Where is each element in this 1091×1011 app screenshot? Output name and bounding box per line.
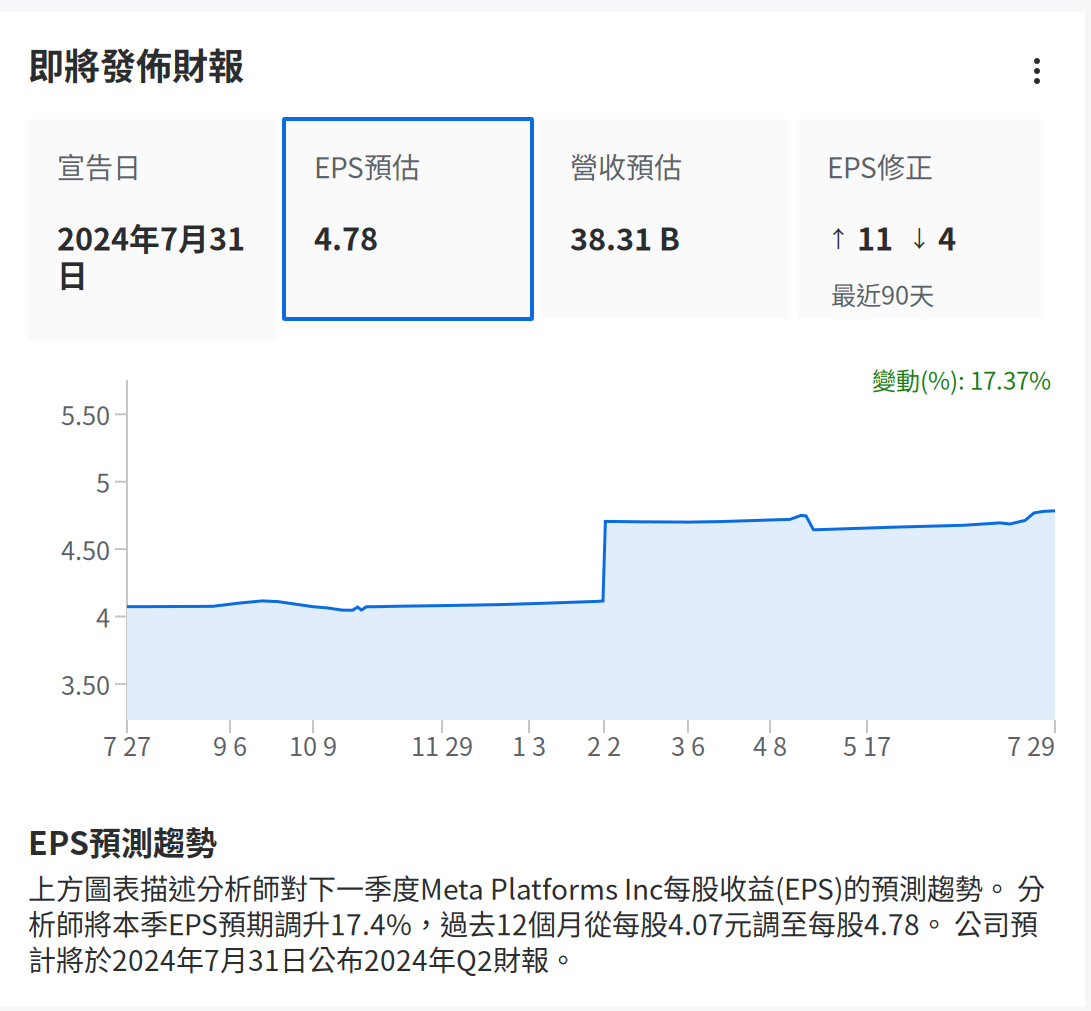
staticText: 宣告日 (57, 146, 141, 186)
staticText: ↓ (893, 221, 931, 254)
button[interactable]: 宣告日 (27, 119, 276, 341)
staticText: 5 (96, 463, 110, 500)
staticText: 上方圖表描述分析師對下一季度Meta Platforms Inc每股收益(EPS… (28, 867, 1045, 979)
staticText: 38.31 B (570, 215, 680, 259)
staticText: 5 17 (843, 727, 891, 763)
staticText: 7 29 (1007, 727, 1055, 763)
staticText: 1 3 (512, 727, 546, 763)
staticText: EPS修正 (827, 146, 933, 186)
staticText: 4 (931, 215, 956, 259)
staticText: 2024年7月31日 (57, 215, 245, 296)
staticText: 4 8 (753, 727, 787, 763)
staticText: 3 6 (671, 727, 705, 763)
staticText: 即將發佈財報 (28, 38, 244, 90)
staticText: 變動(%): 17.37% (872, 362, 1051, 397)
staticText: 5.50 (61, 396, 110, 433)
staticText: 4.78 (314, 215, 378, 259)
staticText: 最近90天 (831, 275, 934, 312)
button[interactable]: EPS預估 (284, 119, 532, 319)
staticText: 7 27 (103, 727, 151, 763)
staticText: 3.50 (61, 666, 110, 702)
staticText: 9 6 (213, 727, 247, 763)
staticText: ↑ (827, 221, 850, 254)
button[interactable]: 營收預估 (540, 119, 789, 319)
button[interactable]: 更多選項 (1009, 43, 1065, 99)
staticText: EPS預測趨勢 (28, 818, 217, 864)
staticText: EPS預估 (314, 146, 420, 186)
button[interactable]: EPS修正 (797, 119, 1044, 319)
staticText: 2 2 (587, 727, 621, 763)
staticText: 營收預估 (570, 146, 682, 186)
staticText: 11 (850, 215, 893, 259)
staticText: 4.50 (61, 531, 110, 567)
staticText: 4 (96, 598, 110, 635)
staticText: 11 29 (411, 727, 473, 763)
staticText: 10 9 (289, 727, 337, 763)
